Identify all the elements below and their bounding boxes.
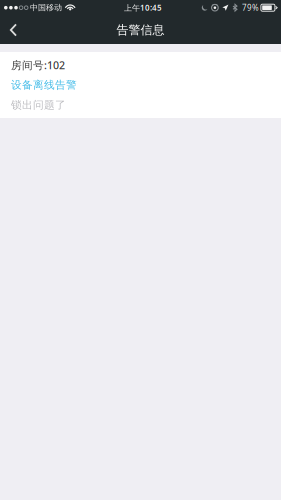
staticText: 上午10:45: [124, 2, 162, 13]
button[interactable]: Back: [0, 16, 29, 44]
staticText: 告警信息: [116, 23, 164, 37]
staticText: 房间号:102: [11, 58, 65, 72]
staticText: 79%: [242, 2, 259, 13]
staticText: 锁出问题了: [11, 98, 66, 111]
staticText: 设备离线告警: [11, 78, 77, 91]
staticText: 中国移动: [30, 3, 62, 13]
